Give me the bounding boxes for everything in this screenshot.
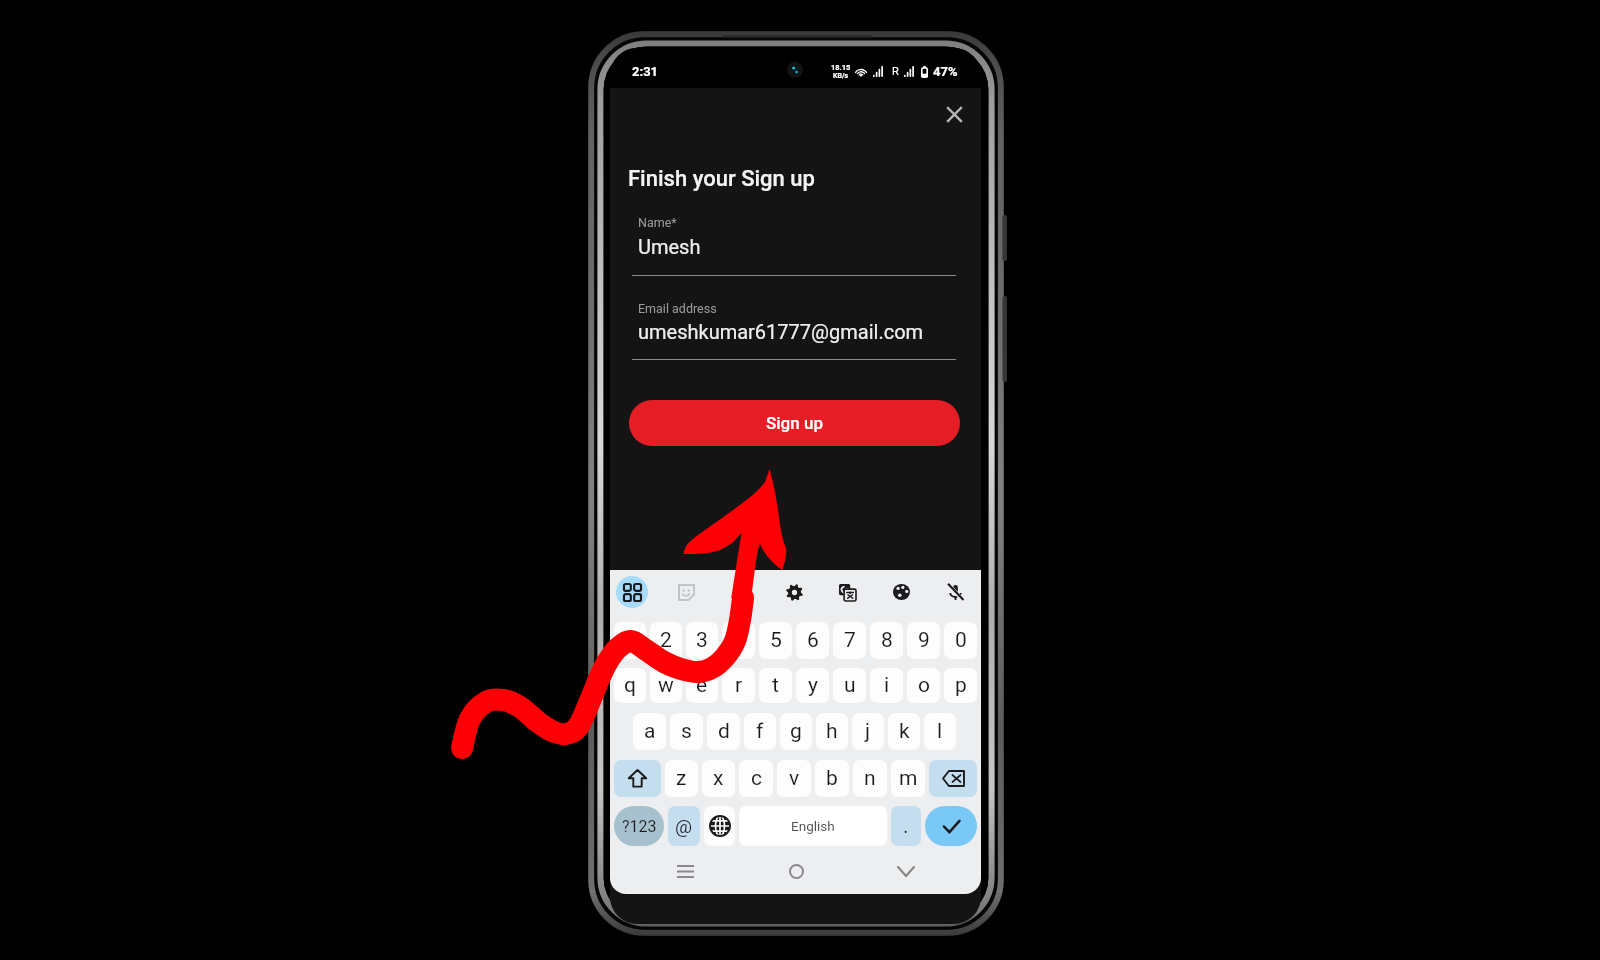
staticText: 0: [955, 628, 967, 653]
button[interactable]: n: [853, 760, 887, 797]
staticText: c: [751, 766, 762, 791]
staticText: l: [937, 719, 943, 744]
staticText: z: [676, 766, 687, 791]
button[interactable]: v: [777, 760, 811, 797]
staticText: e: [696, 673, 708, 698]
staticText: 7: [844, 628, 856, 653]
button[interactable]: .: [891, 806, 921, 846]
button[interactable]: i: [870, 668, 903, 703]
staticText: @: [675, 815, 693, 837]
staticText: w: [658, 673, 674, 698]
button[interactable]: 4: [722, 622, 755, 659]
button[interactable]: 2: [650, 622, 682, 659]
staticText: 18.15: [831, 63, 851, 72]
staticText: 4: [733, 628, 745, 653]
button[interactable]: r: [722, 668, 755, 703]
staticText: t: [772, 673, 779, 698]
staticText: Email address: [638, 301, 717, 316]
button[interactable]: e: [686, 668, 718, 703]
staticText: 3: [696, 628, 708, 653]
button[interactable]: 7: [833, 622, 866, 659]
button[interactable]: l: [924, 713, 956, 750]
button[interactable]: Hide keyboard: [851, 850, 961, 893]
button[interactable]: English: [739, 806, 887, 846]
button[interactable]: h: [816, 713, 848, 750]
staticText: k: [899, 719, 910, 744]
button[interactable]: w: [650, 668, 682, 703]
button[interactable]: Settings: [778, 576, 810, 608]
staticText: j: [865, 719, 871, 744]
button[interactable]: x: [702, 760, 735, 797]
button[interactable]: Voice input off: [939, 576, 971, 608]
button[interactable]: Home: [741, 850, 851, 893]
staticText: q: [624, 673, 636, 698]
button[interactable]: 1: [614, 622, 646, 659]
staticText: 47%: [933, 64, 958, 79]
staticText: 1: [624, 628, 636, 653]
button[interactable]: Change language: [704, 806, 735, 846]
staticText: 6: [807, 628, 819, 653]
button[interactable]: t: [759, 668, 792, 703]
button[interactable]: c: [739, 760, 773, 797]
button[interactable]: Translate: [831, 576, 863, 608]
button[interactable]: Shift: [614, 760, 661, 797]
button[interactable]: Themes: [885, 576, 917, 608]
button[interactable]: 8: [870, 622, 903, 659]
button[interactable]: o: [907, 668, 940, 703]
staticText: y: [808, 673, 818, 698]
button[interactable]: a: [633, 713, 666, 750]
button[interactable]: j: [852, 713, 884, 750]
staticText: 2:31: [632, 64, 659, 79]
button[interactable]: 9: [907, 622, 940, 659]
button[interactable]: Keyboard modes: [616, 576, 648, 608]
staticText: Name*: [638, 215, 677, 230]
staticText: Sign up: [766, 413, 823, 433]
button[interactable]: u: [833, 668, 866, 703]
staticText: h: [826, 719, 838, 744]
staticText: R: [892, 65, 899, 78]
button[interactable]: d: [707, 713, 740, 750]
staticText: 2: [660, 628, 672, 653]
button[interactable]: b: [815, 760, 849, 797]
button[interactable]: y: [796, 668, 829, 703]
staticText: r: [735, 673, 743, 698]
button[interactable]: 5: [759, 622, 792, 659]
staticText: g: [790, 719, 802, 744]
button[interactable]: Enter: [925, 806, 977, 846]
staticText: f: [756, 719, 764, 744]
button[interactable]: p: [944, 668, 977, 703]
staticText: Umesh: [638, 235, 701, 258]
button[interactable]: 0: [944, 622, 977, 659]
button[interactable]: k: [888, 713, 920, 750]
button[interactable]: Recents: [630, 850, 741, 893]
button[interactable]: Close: [934, 94, 974, 134]
staticText: 8: [881, 628, 893, 653]
staticText: Finish your Sign up: [628, 166, 815, 192]
button[interactable]: z: [665, 760, 698, 797]
staticText: a: [644, 719, 656, 744]
staticText: ?123: [622, 817, 657, 836]
staticText: b: [826, 766, 838, 791]
staticText: umeshkumar61777@gmail.com: [638, 320, 924, 343]
button[interactable]: @: [668, 806, 700, 846]
staticText: n: [864, 766, 876, 791]
staticText: English: [791, 818, 835, 834]
staticText: KB/s: [833, 72, 849, 80]
staticText: 9: [918, 628, 930, 653]
button[interactable]: m: [891, 760, 925, 797]
button[interactable]: ?123: [614, 806, 664, 846]
button[interactable]: 6: [796, 622, 829, 659]
button[interactable]: g: [780, 713, 812, 750]
button[interactable]: q: [614, 668, 646, 703]
button[interactable]: s: [670, 713, 703, 750]
button[interactable]: Stickers: [670, 576, 702, 608]
button[interactable]: Backspace: [929, 760, 977, 797]
staticText: 5: [770, 628, 782, 653]
staticText: s: [681, 719, 692, 744]
staticText: u: [844, 673, 856, 698]
button[interactable]: 3: [686, 622, 718, 659]
button[interactable]: Sign up: [629, 400, 960, 446]
staticText: m: [899, 766, 918, 791]
staticText: x: [713, 766, 724, 791]
button[interactable]: f: [744, 713, 776, 750]
